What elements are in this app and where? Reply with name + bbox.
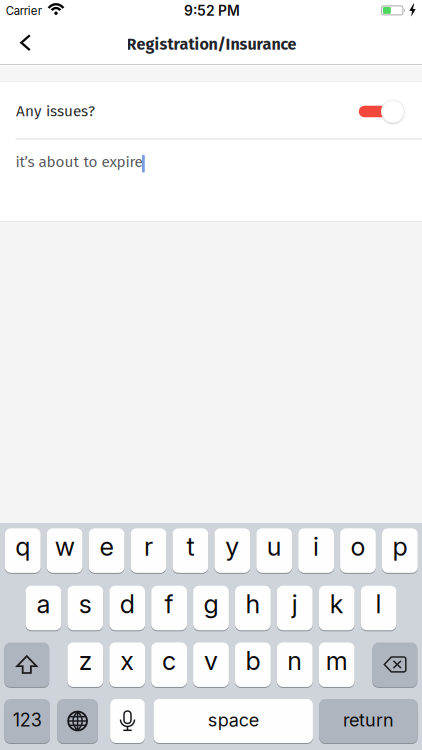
staticText: i — [313, 531, 319, 562]
staticText: s — [79, 589, 92, 619]
staticText: space — [208, 709, 259, 731]
button[interactable]: Shift — [4, 642, 49, 687]
staticText: z — [79, 645, 92, 676]
button[interactable]: space — [153, 698, 313, 743]
staticText: it’s about to expire — [15, 153, 142, 171]
button[interactable]: x — [109, 642, 145, 687]
button[interactable]: g — [193, 585, 229, 631]
staticText: 9:52 PM — [184, 2, 240, 19]
button[interactable]: return — [319, 698, 418, 743]
staticText: Any issues? — [16, 102, 95, 120]
staticText: t — [186, 531, 194, 562]
button[interactable]: f — [151, 585, 187, 631]
staticText: Carrier — [6, 4, 42, 18]
button[interactable]: c — [151, 642, 187, 687]
staticText: u — [267, 531, 282, 562]
button[interactable]: Next keyboard — [57, 698, 98, 743]
button[interactable]: h — [235, 585, 271, 631]
staticText: f — [165, 589, 174, 619]
button[interactable]: r — [131, 528, 166, 573]
button[interactable]: o — [340, 528, 376, 573]
button[interactable]: i — [298, 528, 334, 573]
button[interactable]: z — [67, 642, 103, 687]
staticText: v — [204, 645, 218, 676]
staticText: a — [36, 589, 50, 619]
staticText: 123 — [13, 709, 42, 731]
button[interactable]: k — [319, 585, 355, 631]
staticText: g — [203, 589, 218, 619]
button[interactable]: Any issues? — [356, 95, 406, 127]
button[interactable]: w — [47, 528, 83, 573]
staticText: m — [326, 645, 348, 676]
staticText: r — [144, 531, 153, 562]
button[interactable]: y — [214, 528, 250, 573]
button[interactable]: Delete — [372, 642, 417, 687]
button[interactable]: t — [172, 528, 208, 573]
staticText: e — [100, 531, 114, 562]
staticText: q — [15, 531, 30, 562]
button[interactable]: 123 — [4, 698, 50, 743]
button[interactable]: l — [361, 585, 396, 631]
staticText: y — [225, 531, 239, 562]
button[interactable]: u — [256, 528, 292, 573]
staticText: Registration/Insurance — [126, 35, 296, 54]
button[interactable]: Dictate — [110, 698, 145, 743]
button[interactable]: e — [89, 528, 124, 573]
button[interactable]: q — [5, 528, 41, 573]
staticText: return — [343, 709, 394, 731]
staticText: k — [330, 589, 344, 619]
staticText: l — [376, 589, 382, 619]
button[interactable]: d — [109, 585, 145, 631]
button[interactable]: Back — [8, 23, 42, 63]
staticText: o — [350, 531, 365, 562]
staticText: n — [287, 645, 302, 676]
staticText: c — [162, 645, 176, 676]
button[interactable]: a — [25, 585, 61, 631]
button[interactable]: j — [277, 585, 313, 631]
button[interactable]: p — [382, 528, 418, 573]
button[interactable]: s — [67, 585, 103, 631]
button[interactable]: m — [319, 642, 355, 687]
staticText: j — [292, 589, 298, 619]
button[interactable]: n — [277, 642, 313, 687]
staticText: w — [55, 531, 75, 562]
button[interactable]: v — [193, 642, 229, 687]
staticText: d — [120, 589, 135, 619]
staticText: h — [245, 589, 260, 619]
staticText: x — [120, 645, 134, 676]
staticText: b — [245, 645, 260, 676]
button[interactable]: b — [235, 642, 271, 687]
staticText: p — [392, 531, 407, 562]
